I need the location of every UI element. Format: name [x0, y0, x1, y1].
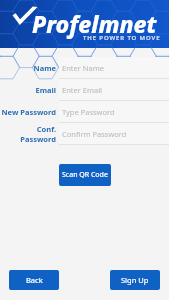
staticText: Scan QR Code [62, 170, 108, 180]
button[interactable]: Scan QR Code [59, 164, 111, 186]
staticText: THE POWER TO MOVE [83, 34, 161, 42]
staticText: Email [35, 85, 56, 95]
button[interactable]: Back [9, 270, 59, 290]
staticText: Sign Up [121, 275, 149, 285]
staticText: Conf. Password [0, 124, 56, 144]
staticText: Confirm Password [62, 129, 127, 139]
staticText: Profelmnet [32, 8, 157, 39]
staticText: Name [33, 63, 56, 73]
staticText: New Password [1, 107, 56, 117]
staticText: Type Password [62, 107, 115, 117]
button[interactable]: Name [0, 57, 169, 79]
button[interactable]: New Password [0, 101, 169, 123]
staticText: Enter Name [62, 63, 104, 73]
button[interactable]: Email [0, 79, 169, 101]
staticText: Back [26, 275, 43, 285]
button[interactable]: Conf. Password [0, 123, 169, 145]
button[interactable]: Sign Up [110, 270, 160, 290]
staticText: Enter Email [62, 85, 103, 95]
